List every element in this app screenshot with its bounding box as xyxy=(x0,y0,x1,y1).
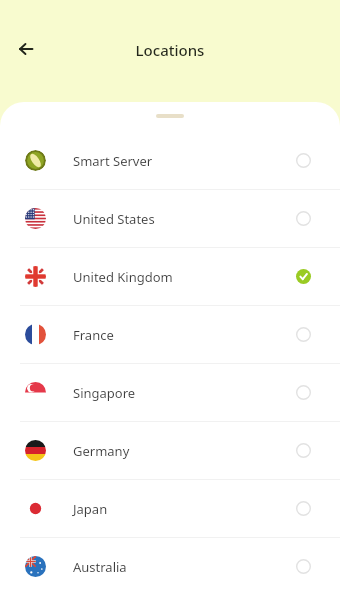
staticText: Japan xyxy=(73,500,108,518)
staticText: Australia xyxy=(73,558,127,576)
button[interactable]: Smart Server xyxy=(0,132,340,189)
button[interactable]: Japan xyxy=(0,480,340,537)
button[interactable]: France xyxy=(0,306,340,363)
button[interactable]: Australia xyxy=(0,538,340,595)
button[interactable]: United States xyxy=(0,190,340,247)
staticText: France xyxy=(73,326,114,344)
staticText: United States xyxy=(73,210,155,228)
staticText: Singapore xyxy=(73,384,136,402)
staticText: United Kingdom xyxy=(73,268,173,286)
staticText: Smart Server xyxy=(73,152,153,170)
button[interactable]: Back xyxy=(10,33,42,65)
staticText: Germany xyxy=(73,442,130,460)
button[interactable]: United Kingdom xyxy=(0,248,340,305)
button[interactable]: Germany xyxy=(0,422,340,479)
button[interactable]: Singapore xyxy=(0,364,340,421)
staticText: Locations xyxy=(0,40,340,60)
